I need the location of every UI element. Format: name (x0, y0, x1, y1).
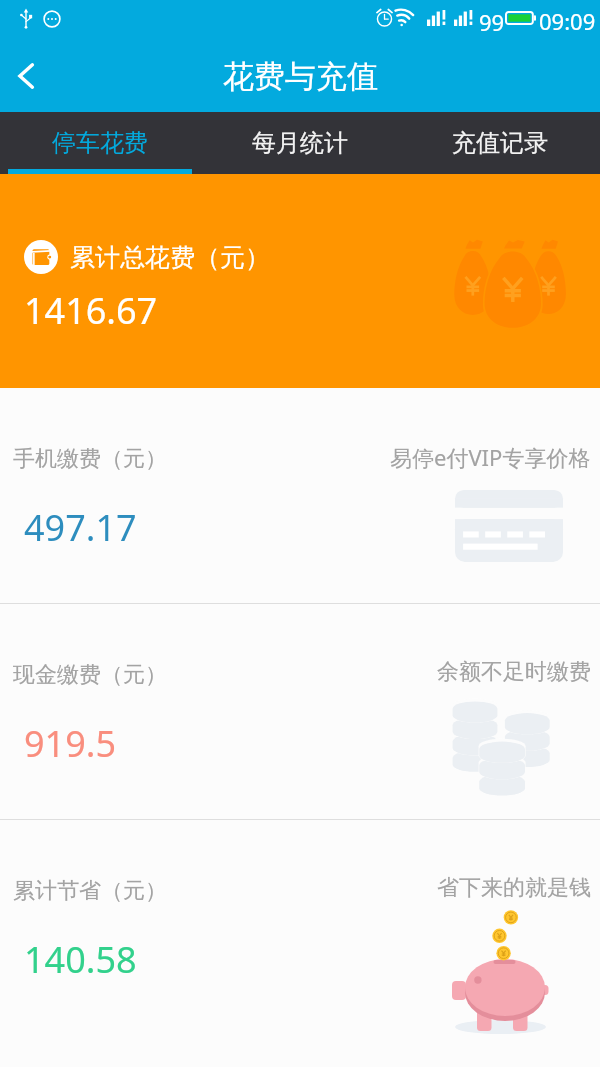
staticText: 省下来的就是钱 (437, 874, 591, 902)
staticText: 余额不足时缴费 (437, 658, 591, 686)
staticText: 现金缴费（元） (13, 661, 167, 689)
staticText: 易停e付VIP专享价格 (390, 442, 591, 472)
button[interactable]: 每月统计 (200, 112, 400, 174)
button[interactable]: Back (0, 40, 50, 112)
staticText: 1416.67 (24, 286, 158, 335)
staticText: 919.5 (24, 719, 117, 768)
staticText: 累计总花费（元） (70, 242, 270, 273)
staticText: 手机缴费（元） (13, 445, 167, 473)
staticText: 充值记录 (452, 128, 548, 158)
button[interactable]: 停车花费 (0, 112, 200, 174)
staticText: 花费与充值 (223, 57, 378, 96)
staticText: 累计节省（元） (13, 877, 167, 905)
button[interactable]: 手机缴费（元） (0, 388, 600, 603)
staticText: 497.17 (24, 503, 137, 552)
button[interactable]: 现金缴费（元） (0, 604, 600, 819)
staticText: 停车花费 (52, 128, 148, 158)
staticText: 每月统计 (252, 128, 348, 158)
staticText: 99 (479, 7, 505, 37)
button[interactable]: 累计节省（元） (0, 820, 600, 1035)
staticText: 09:09 (539, 6, 596, 36)
button[interactable]: 充值记录 (400, 112, 600, 174)
staticText: 140.58 (24, 935, 137, 984)
